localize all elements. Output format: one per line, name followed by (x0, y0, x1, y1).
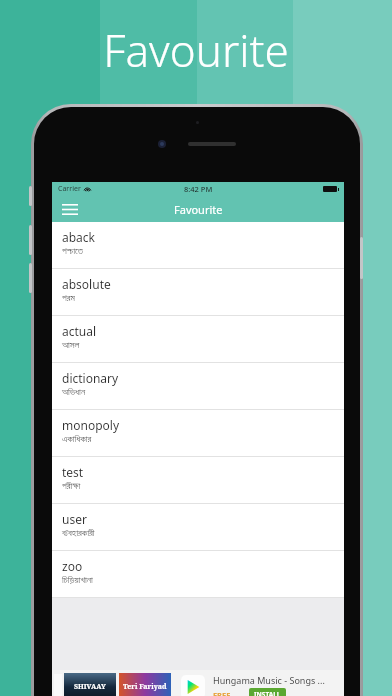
staticText: Carrier (58, 184, 81, 194)
button[interactable]: Open navigation menu (60, 199, 80, 219)
staticText: monopoly (62, 417, 120, 433)
button[interactable]: test (52, 457, 344, 504)
staticText: চিড়িয়াখানা (62, 575, 93, 584)
staticText: Favourite (103, 20, 289, 80)
staticText: Teri Fariyad (123, 682, 167, 692)
staticText: absolute (62, 276, 111, 292)
button[interactable]: aback (52, 222, 344, 269)
staticText: একাধিকার (62, 434, 92, 443)
staticText: ব্যবহারকারী (62, 528, 95, 537)
staticText: aback (62, 229, 96, 245)
staticText: Hungama Music - Songs ... (213, 674, 325, 686)
staticText: 8:42 PM (184, 184, 213, 194)
staticText: পরীক্ষা (62, 481, 81, 490)
staticText: আসল (62, 340, 80, 349)
staticText: actual (62, 323, 97, 339)
staticText: dictionary (62, 370, 119, 386)
staticText: পশ্চাতে (62, 246, 83, 255)
staticText: test (62, 464, 84, 480)
button[interactable]: Advertisement: Hungama Music (52, 670, 344, 696)
button[interactable]: zoo (52, 551, 344, 598)
staticText: SHIVAAY (74, 682, 106, 692)
button[interactable]: monopoly (52, 410, 344, 457)
staticText: user (62, 511, 87, 527)
button[interactable]: user (52, 504, 344, 551)
staticText: FREE (213, 690, 231, 696)
staticText: Favourite (174, 202, 223, 217)
button[interactable]: dictionary (52, 363, 344, 410)
button[interactable]: INSTALL (254, 690, 281, 696)
staticText: INSTALL (254, 690, 281, 696)
staticText: পরম (62, 293, 75, 302)
button[interactable]: actual (52, 316, 344, 363)
button[interactable]: absolute (52, 269, 344, 316)
staticText: অভিধান (62, 387, 86, 396)
staticText: zoo (62, 558, 83, 574)
